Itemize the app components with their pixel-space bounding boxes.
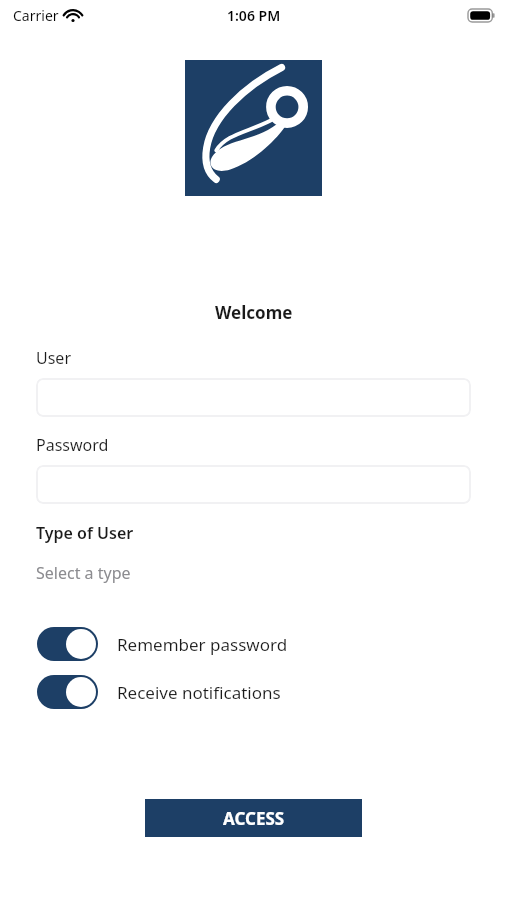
staticText: ACCESS bbox=[223, 807, 285, 830]
staticText: Remember password bbox=[117, 633, 288, 656]
button[interactable]: Select a type bbox=[36, 561, 471, 585]
button[interactable]: ACCESS bbox=[145, 799, 362, 837]
staticText: 1:06 PM bbox=[227, 6, 281, 25]
staticText: Carrier bbox=[13, 6, 59, 25]
button[interactable]: Remember password bbox=[37, 627, 302, 661]
staticText: Receive notifications bbox=[117, 681, 281, 704]
staticText: Type of User bbox=[36, 522, 134, 544]
other: App logo bbox=[185, 60, 322, 196]
button[interactable]: Text field bbox=[36, 378, 471, 417]
staticText: User bbox=[36, 347, 71, 369]
staticText: Select a type bbox=[36, 562, 131, 584]
staticText: Password bbox=[36, 434, 109, 456]
button[interactable]: Receive notifications bbox=[37, 675, 295, 709]
button[interactable]: Text field bbox=[36, 465, 471, 504]
staticText: Welcome bbox=[215, 301, 293, 324]
